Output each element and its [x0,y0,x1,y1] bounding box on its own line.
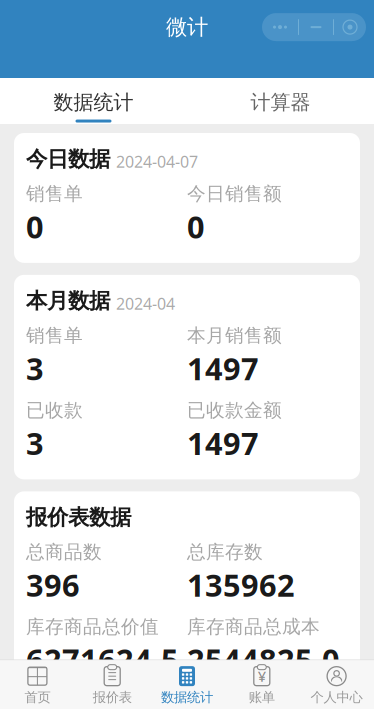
staticText: 0 [26,206,44,247]
button[interactable]: Minimize [299,15,333,39]
button[interactable]: More [262,15,298,39]
staticText: 3 [26,423,44,463]
button[interactable]: 计算器 [187,78,374,123]
staticText: 数据统计 [161,689,213,706]
button[interactable]: ¥ [224,660,299,709]
staticText: 账单 [249,689,275,706]
staticText: 2544825.0 [187,639,340,680]
staticText: 报价表数据 [26,504,131,531]
staticText: 1497 [187,423,259,463]
staticText: 本月数据 [26,288,110,314]
staticText: 1497 [187,348,259,389]
staticText: 数据统计 [53,90,133,115]
staticText: 计算器 [250,90,310,115]
staticText: 已收款金额 [187,399,282,422]
staticText: 135962 [187,564,295,605]
staticText: ¥ [258,666,266,686]
staticText: 销售单 [26,182,83,205]
button[interactable]: 首页 [0,660,75,709]
button[interactable]: 数据统计 [150,660,224,709]
staticText: 本月销售额 [187,324,282,347]
staticText: 首页 [24,689,50,706]
button[interactable]: Close [334,15,366,39]
staticText: 总库存数 [187,541,263,563]
staticText: 已收款 [26,399,83,422]
staticText: 今日销售额 [187,182,282,205]
staticText: 396 [26,564,80,605]
staticText: 3 [26,348,44,389]
staticText: 库存商品总价值 [26,615,159,638]
staticText: 2024-04-07 [116,151,198,172]
staticText: 个人中心 [311,689,363,706]
button[interactable]: 个人中心 [299,660,374,709]
staticText: 0 [187,206,205,247]
button[interactable]: 数据统计 [0,78,187,123]
staticText: 总商品数 [26,541,102,563]
staticText: 微计 [166,14,208,40]
staticText: 2024-04 [116,293,175,314]
staticText: 销售单 [26,324,83,347]
staticText: 库存商品总成本 [187,615,320,638]
button[interactable]: 报价表 [75,660,150,709]
staticText: 报价表 [93,689,132,706]
staticText: 今日数据 [26,146,110,172]
staticText: 6271624.5 [26,639,179,680]
